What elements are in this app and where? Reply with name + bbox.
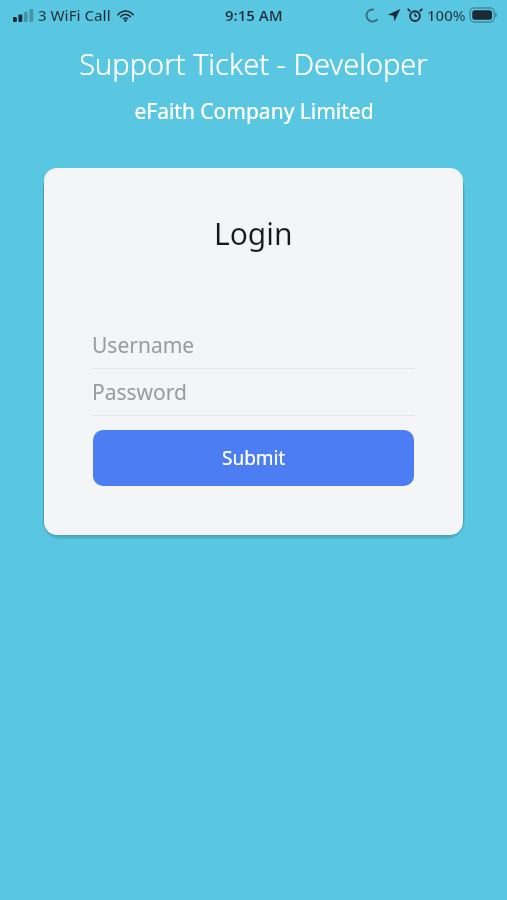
staticText: 3 WiFi Call [38, 5, 111, 25]
button[interactable]: Username [92, 323, 415, 369]
staticText: Username [92, 331, 195, 360]
staticText: eFaith Company Limited [134, 97, 374, 126]
staticText: 100% [427, 5, 466, 25]
button[interactable]: Submit [93, 430, 414, 486]
staticText: Login [214, 213, 293, 254]
staticText: Password [92, 378, 187, 407]
staticText: 9:15 AM [225, 5, 283, 25]
staticText: Submit [222, 445, 286, 471]
button[interactable]: Password [92, 370, 415, 416]
staticText: Support Ticket - Developer [79, 44, 428, 83]
